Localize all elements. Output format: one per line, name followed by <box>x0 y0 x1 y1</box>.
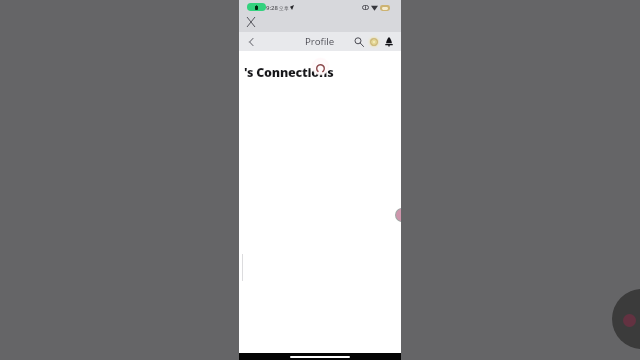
button[interactable]: Rewards <box>365 33 382 50</box>
button[interactable]: Stop recording <box>612 289 640 349</box>
button[interactable]: Back <box>242 33 259 50</box>
button[interactable]: Notifications <box>380 33 397 50</box>
staticText: Profile <box>305 35 335 48</box>
button[interactable]: Close <box>243 14 258 29</box>
staticText: 's Connections <box>244 64 334 81</box>
button[interactable]: Floating action <box>395 208 401 222</box>
staticText: 9:28 <box>266 4 278 12</box>
staticText: 오후 <box>279 5 289 11</box>
button[interactable]: Search <box>350 33 367 50</box>
